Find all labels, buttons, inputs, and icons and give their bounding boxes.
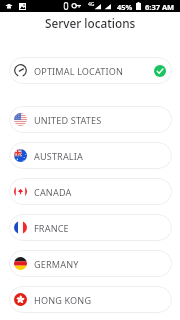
- button[interactable]: UNITED STATES: [9, 106, 172, 133]
- button[interactable]: FRANCE: [9, 214, 172, 241]
- staticText: AUSTRALIA: [34, 150, 83, 162]
- other: Selected: [154, 65, 166, 77]
- staticText: Server locations: [45, 15, 136, 29]
- staticText: FRANCE: [34, 222, 69, 234]
- staticText: UNITED STATES: [34, 114, 102, 126]
- button[interactable]: OPTIMAL LOCATION: [9, 57, 172, 84]
- staticText: 4G: [88, 1, 95, 8]
- staticText: 6:37 AM: [145, 2, 175, 12]
- button[interactable]: AUSTRALIA: [9, 142, 172, 169]
- staticText: OPTIMAL LOCATION: [34, 65, 124, 77]
- staticText: GERMANY: [34, 258, 79, 270]
- button[interactable]: GERMANY: [9, 250, 172, 277]
- button[interactable]: CANADA: [9, 178, 172, 205]
- staticText: CANADA: [34, 186, 72, 198]
- staticText: HONG KONG: [34, 294, 92, 306]
- button[interactable]: HONG KONG: [9, 286, 172, 313]
- staticText: 45%: [117, 2, 133, 12]
